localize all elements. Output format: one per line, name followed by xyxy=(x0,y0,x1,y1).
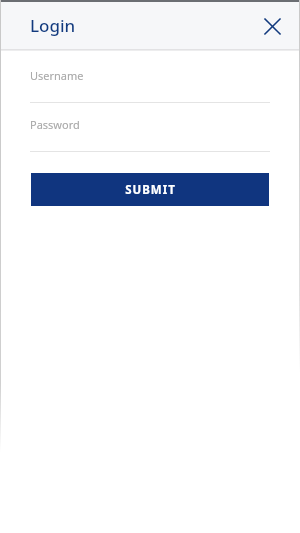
button[interactable]: Close xyxy=(252,6,292,46)
staticText: Login xyxy=(30,14,76,37)
button[interactable]: Password xyxy=(30,117,270,151)
staticText: Username xyxy=(30,68,84,83)
staticText: SUBMIT xyxy=(125,182,176,198)
button[interactable]: Username xyxy=(30,68,270,102)
button[interactable]: SUBMIT xyxy=(31,173,269,206)
staticText: Password xyxy=(30,117,80,132)
